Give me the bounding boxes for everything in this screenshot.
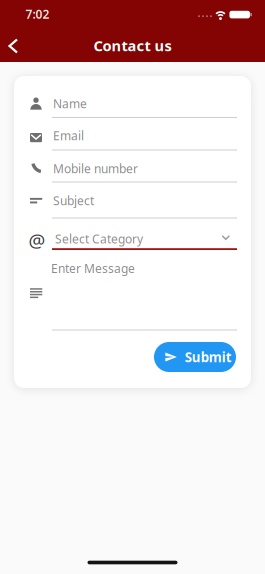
staticText: Mobile number bbox=[53, 160, 138, 176]
staticText: Select Category bbox=[55, 231, 143, 247]
staticText: @ bbox=[28, 228, 45, 253]
button[interactable]: Submit bbox=[154, 342, 236, 372]
button[interactable]: Name bbox=[53, 88, 237, 118]
staticText: Email bbox=[53, 127, 84, 143]
staticText: Name bbox=[53, 95, 87, 111]
staticText: Submit bbox=[185, 348, 232, 366]
button[interactable]: Email bbox=[53, 120, 237, 150]
staticText: Contact us bbox=[93, 36, 171, 55]
staticText: 7:02 bbox=[25, 6, 49, 22]
staticText: Subject bbox=[53, 192, 94, 208]
staticText: Enter Message bbox=[51, 260, 135, 276]
button[interactable]: Back bbox=[1, 34, 25, 58]
button[interactable]: Mobile number bbox=[53, 153, 237, 183]
button[interactable]: Select Category bbox=[55, 224, 238, 254]
button[interactable]: Enter Message bbox=[51, 260, 236, 332]
button[interactable]: Subject bbox=[53, 185, 237, 215]
